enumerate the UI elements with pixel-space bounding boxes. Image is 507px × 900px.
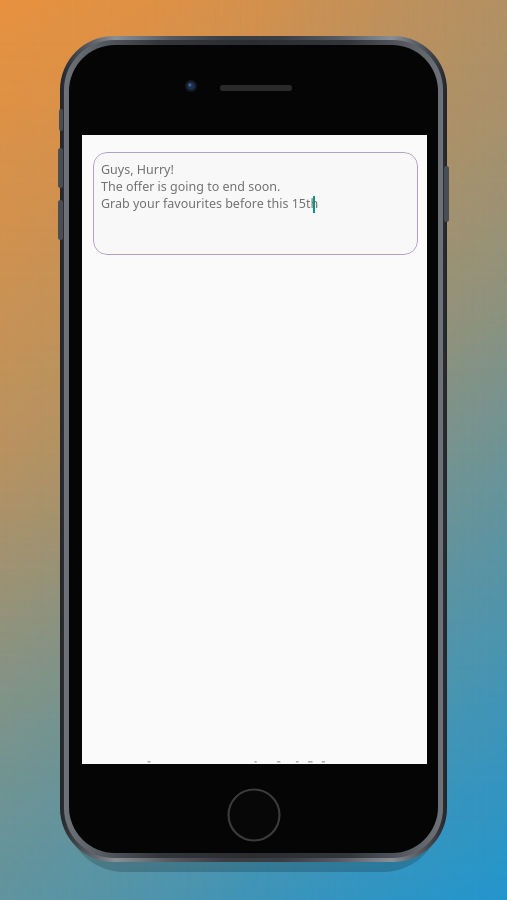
button[interactable]: Guys, Hurry! [93,152,418,255]
staticText: The offer is going to end soon. [101,178,281,195]
staticText: Grab your favourites before this 15th [101,195,319,212]
staticText: Guys, Hurry! [101,161,174,178]
button[interactable]: Home [227,788,281,842]
